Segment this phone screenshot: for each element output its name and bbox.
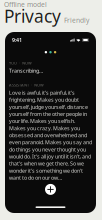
staticText: YOU · NOW	[9, 60, 32, 66]
button[interactable]: New	[40, 181, 60, 197]
staticText: Privacy	[4, 4, 61, 27]
staticText: Offline model	[4, 0, 47, 9]
staticText: Friendly	[64, 16, 89, 25]
staticText: Transcribing…	[9, 67, 43, 74]
staticText: 9:41	[12, 36, 22, 44]
staticText: ASSISTANT · NOW	[9, 82, 44, 88]
staticText: Love is awful, it's painful, it's fright…	[9, 89, 92, 181]
